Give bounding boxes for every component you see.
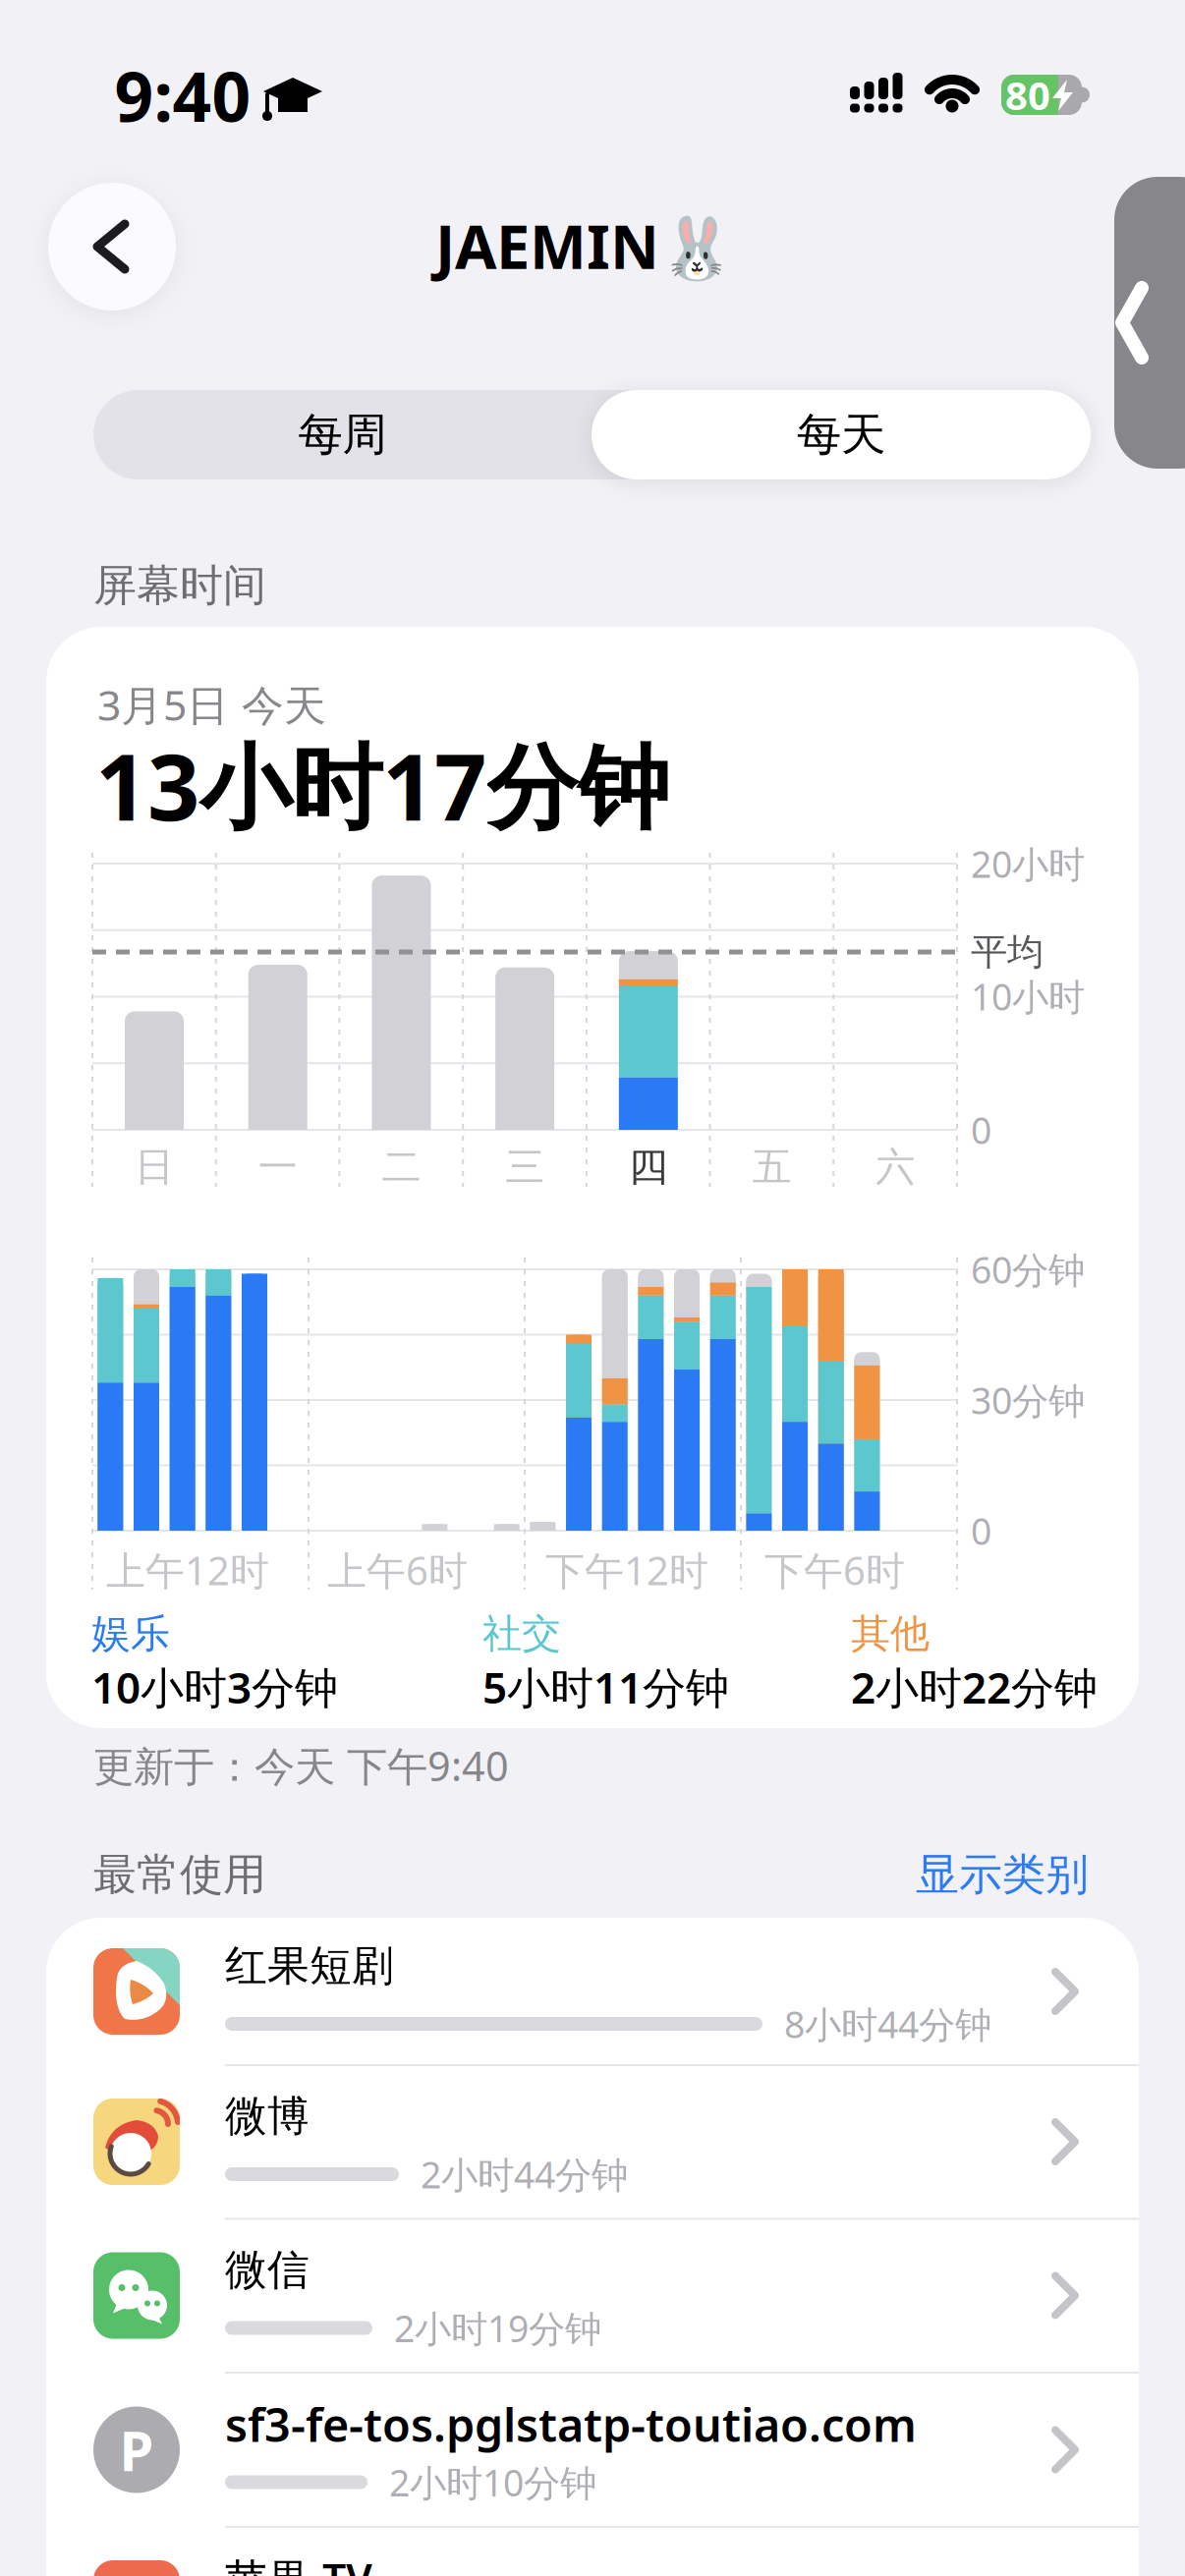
staticText: 微博 [225,2090,310,2142]
staticText: 六 [876,1143,915,1191]
staticText: JAEMIN🐰 [435,206,734,286]
staticText: 2小时44分钟 [421,2150,628,2199]
staticText: P [119,2413,154,2486]
staticText: 更新于：今天 下午9:40 [93,1739,509,1792]
staticText: 8小时44分钟 [784,1999,991,2048]
staticText: 苹果 TV [225,2550,372,2576]
staticText: 四 [629,1143,668,1191]
staticText: 2小时10分钟 [389,2458,596,2507]
staticText: 微信 [225,2244,310,2296]
staticText: 红果短剧 [225,1940,394,1992]
staticText: 下午6时 [764,1544,905,1596]
staticText: 13小时17分钟 [95,724,669,846]
staticText: 五 [752,1143,792,1191]
staticText: 平均 [971,930,1044,975]
staticText: 日 [135,1143,174,1191]
button[interactable]: Back [48,183,176,310]
button[interactable]: 微信 [46,2218,1139,2373]
staticText: 0 [971,1105,991,1154]
staticText: 一 [258,1143,297,1191]
staticText: 60分钟 [971,1245,1085,1294]
staticText: 30分钟 [971,1376,1085,1424]
staticText: 3月5日 今天 [97,677,326,732]
staticText: 三 [505,1143,544,1191]
button[interactable]: 显示类别 [794,1848,1089,1901]
staticText: 下午12时 [545,1544,708,1596]
staticText: sf3-fe-tos.pglstatp-toutiao.com [225,2394,917,2455]
staticText: 10小时 [971,972,1085,1021]
staticText: 屏幕时间 [93,559,266,612]
staticText: 娱乐 [91,1610,170,1658]
button[interactable]: 微博 [46,2065,1139,2219]
button[interactable]: 每天 [592,390,1091,479]
staticText: 社交 [482,1610,561,1658]
button[interactable]: 红果短剧 [46,1914,1139,2069]
staticText: 80 [1005,69,1050,121]
button[interactable]: Hide panel [1114,177,1185,469]
staticText: 9:40 [114,50,251,141]
staticText: 5小时11分钟 [482,1658,729,1716]
staticText: 每天 [797,407,885,462]
staticText: 20小时 [971,839,1085,888]
staticText: 每周 [298,407,387,462]
button[interactable]: P [46,2373,1139,2527]
button[interactable]: 每周 [93,390,592,479]
staticText: 10小时3分钟 [91,1658,338,1716]
staticText: 二 [382,1143,421,1191]
staticText: 上午6时 [327,1544,468,1596]
staticText: 显示类别 [916,1848,1089,1901]
button[interactable]: 苹果 TV [46,2526,1139,2576]
staticText: 上午12时 [106,1544,269,1596]
staticText: 2小时19分钟 [394,2304,601,2352]
staticText: 最常使用 [93,1848,266,1901]
staticText: 0 [971,1506,991,1555]
staticText: 其他 [851,1610,930,1658]
staticText: 2小时22分钟 [851,1658,1098,1716]
